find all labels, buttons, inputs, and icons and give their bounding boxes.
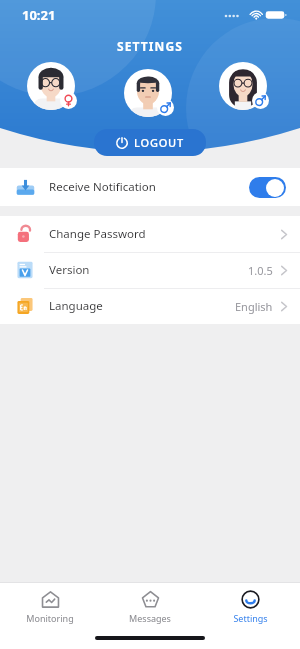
staticText: Change Password xyxy=(49,226,146,242)
button[interactable]: Receive notification toggle, on xyxy=(249,177,286,198)
staticText: Receive Notification xyxy=(49,179,156,195)
staticText: Settings xyxy=(233,612,268,624)
button[interactable]: Messages xyxy=(100,583,200,630)
staticText: Monitoring xyxy=(26,612,74,624)
staticText: SETTINGS xyxy=(117,38,183,54)
button[interactable]: Monitoring xyxy=(0,583,100,630)
button[interactable]: Settings xyxy=(200,583,300,630)
staticText: Language xyxy=(49,298,103,314)
button[interactable]: Receive Notification xyxy=(0,168,300,206)
staticText: English xyxy=(235,299,273,314)
button[interactable]: Change Password xyxy=(0,216,300,252)
staticText: Messages xyxy=(129,612,171,624)
button[interactable]: LOGOUT xyxy=(94,129,206,156)
staticText: 1.0.5 xyxy=(248,263,273,278)
staticText: 10:21 xyxy=(22,6,56,24)
staticText: Version xyxy=(49,262,90,278)
button[interactable]: Version xyxy=(0,252,300,288)
staticText: LOGOUT xyxy=(134,135,184,150)
button[interactable]: Language xyxy=(0,288,300,324)
